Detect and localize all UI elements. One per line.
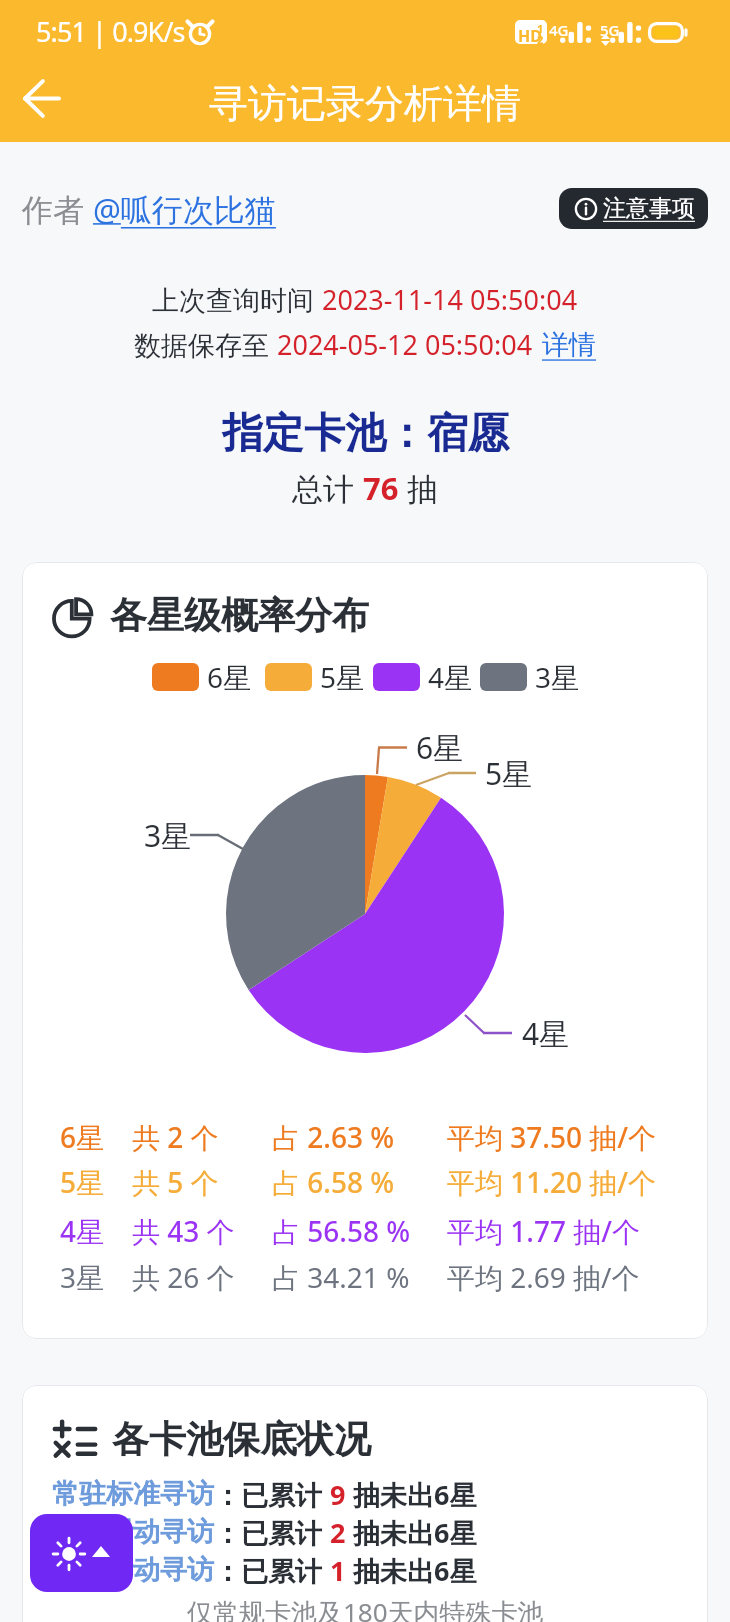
staticText: 抽未出6星 xyxy=(346,1514,477,1551)
staticText: 5G xyxy=(600,20,620,40)
staticText: 平均 11.20 抽/个 xyxy=(447,1163,657,1201)
staticText: 上次查询时间 xyxy=(152,281,322,318)
staticText: 作者 xyxy=(22,188,93,230)
staticText: 平均 2.69 抽/个 xyxy=(447,1258,640,1296)
staticText: 武器活动寻访 xyxy=(52,1553,214,1587)
staticText: @呱行次比猫 xyxy=(93,188,276,230)
staticText: 数据保存至 xyxy=(134,326,277,363)
staticText: 2024-05-12 05:50:04 xyxy=(277,326,533,363)
staticText: 共 2 个 xyxy=(132,1118,219,1156)
staticText: 共 5 个 xyxy=(132,1163,219,1201)
staticText: 3星 xyxy=(60,1258,105,1296)
staticText: 总计 xyxy=(292,467,363,509)
staticText: 3星 xyxy=(535,658,580,696)
staticText: HD xyxy=(518,25,542,47)
staticText: 指定卡池：宿愿 xyxy=(222,408,509,460)
button[interactable]: Back xyxy=(0,66,84,130)
staticText: 2 xyxy=(537,32,544,47)
staticText: ：已累计 xyxy=(214,1552,330,1589)
staticText: 3星 xyxy=(144,815,192,856)
staticText: 6星 xyxy=(60,1118,105,1156)
staticText: 4星 xyxy=(60,1212,105,1250)
staticText: 1 xyxy=(537,21,544,36)
staticText: 常驻标准寻访 xyxy=(52,1477,214,1511)
staticText: 共 43 个 xyxy=(132,1212,235,1250)
button[interactable]: 注意事项 xyxy=(559,188,708,229)
staticText: ：已累计 xyxy=(214,1476,330,1513)
staticText: 2023-11-14 05:50:04 xyxy=(322,281,578,318)
staticText: 占 56.58 % xyxy=(272,1212,411,1250)
staticText: 占 6.58 % xyxy=(272,1163,395,1201)
staticText: 2 xyxy=(330,1514,346,1551)
staticText: 5:51 | 0.9K/s xyxy=(36,13,185,50)
staticText: ：已累计 xyxy=(214,1514,330,1551)
staticText: 寻访记录分析详情 xyxy=(209,79,521,128)
button[interactable]: Brightness xyxy=(30,1514,133,1592)
staticText: 4星 xyxy=(428,658,473,696)
staticText: 5星 xyxy=(485,753,533,794)
button[interactable]: 详情 xyxy=(542,328,596,362)
staticText: 平均 1.77 抽/个 xyxy=(447,1212,641,1250)
staticText: 共 26 个 xyxy=(132,1258,235,1296)
staticText: 注意事项 xyxy=(603,194,695,223)
staticText: 占 34.21 % xyxy=(272,1258,410,1296)
staticText: 抽 xyxy=(399,467,439,509)
staticText: 抽未出6星 xyxy=(346,1476,477,1513)
staticText: 1 xyxy=(330,1552,346,1589)
staticText: 仅常规卡池及180天内特殊卡池 xyxy=(187,1594,544,1622)
staticText: 占 2.63 % xyxy=(272,1118,395,1156)
staticText: 平均 37.50 抽/个 xyxy=(447,1118,657,1156)
staticText: 76 xyxy=(363,467,399,509)
staticText: 6星 xyxy=(207,658,252,696)
staticText: 4星 xyxy=(522,1013,570,1054)
staticText: 6星 xyxy=(416,727,464,768)
staticText: 各卡池保底状况 xyxy=(112,1416,371,1463)
staticText: 5星 xyxy=(60,1163,105,1201)
staticText: 各星级概率分布 xyxy=(110,592,369,639)
staticText: 9 xyxy=(330,1476,346,1513)
staticText: 角色活动寻访 xyxy=(52,1515,214,1549)
staticText: 抽未出6星 xyxy=(346,1552,477,1589)
staticText: 4G xyxy=(549,20,569,40)
button[interactable]: 作者 xyxy=(22,186,276,232)
staticText: 5星 xyxy=(320,658,365,696)
